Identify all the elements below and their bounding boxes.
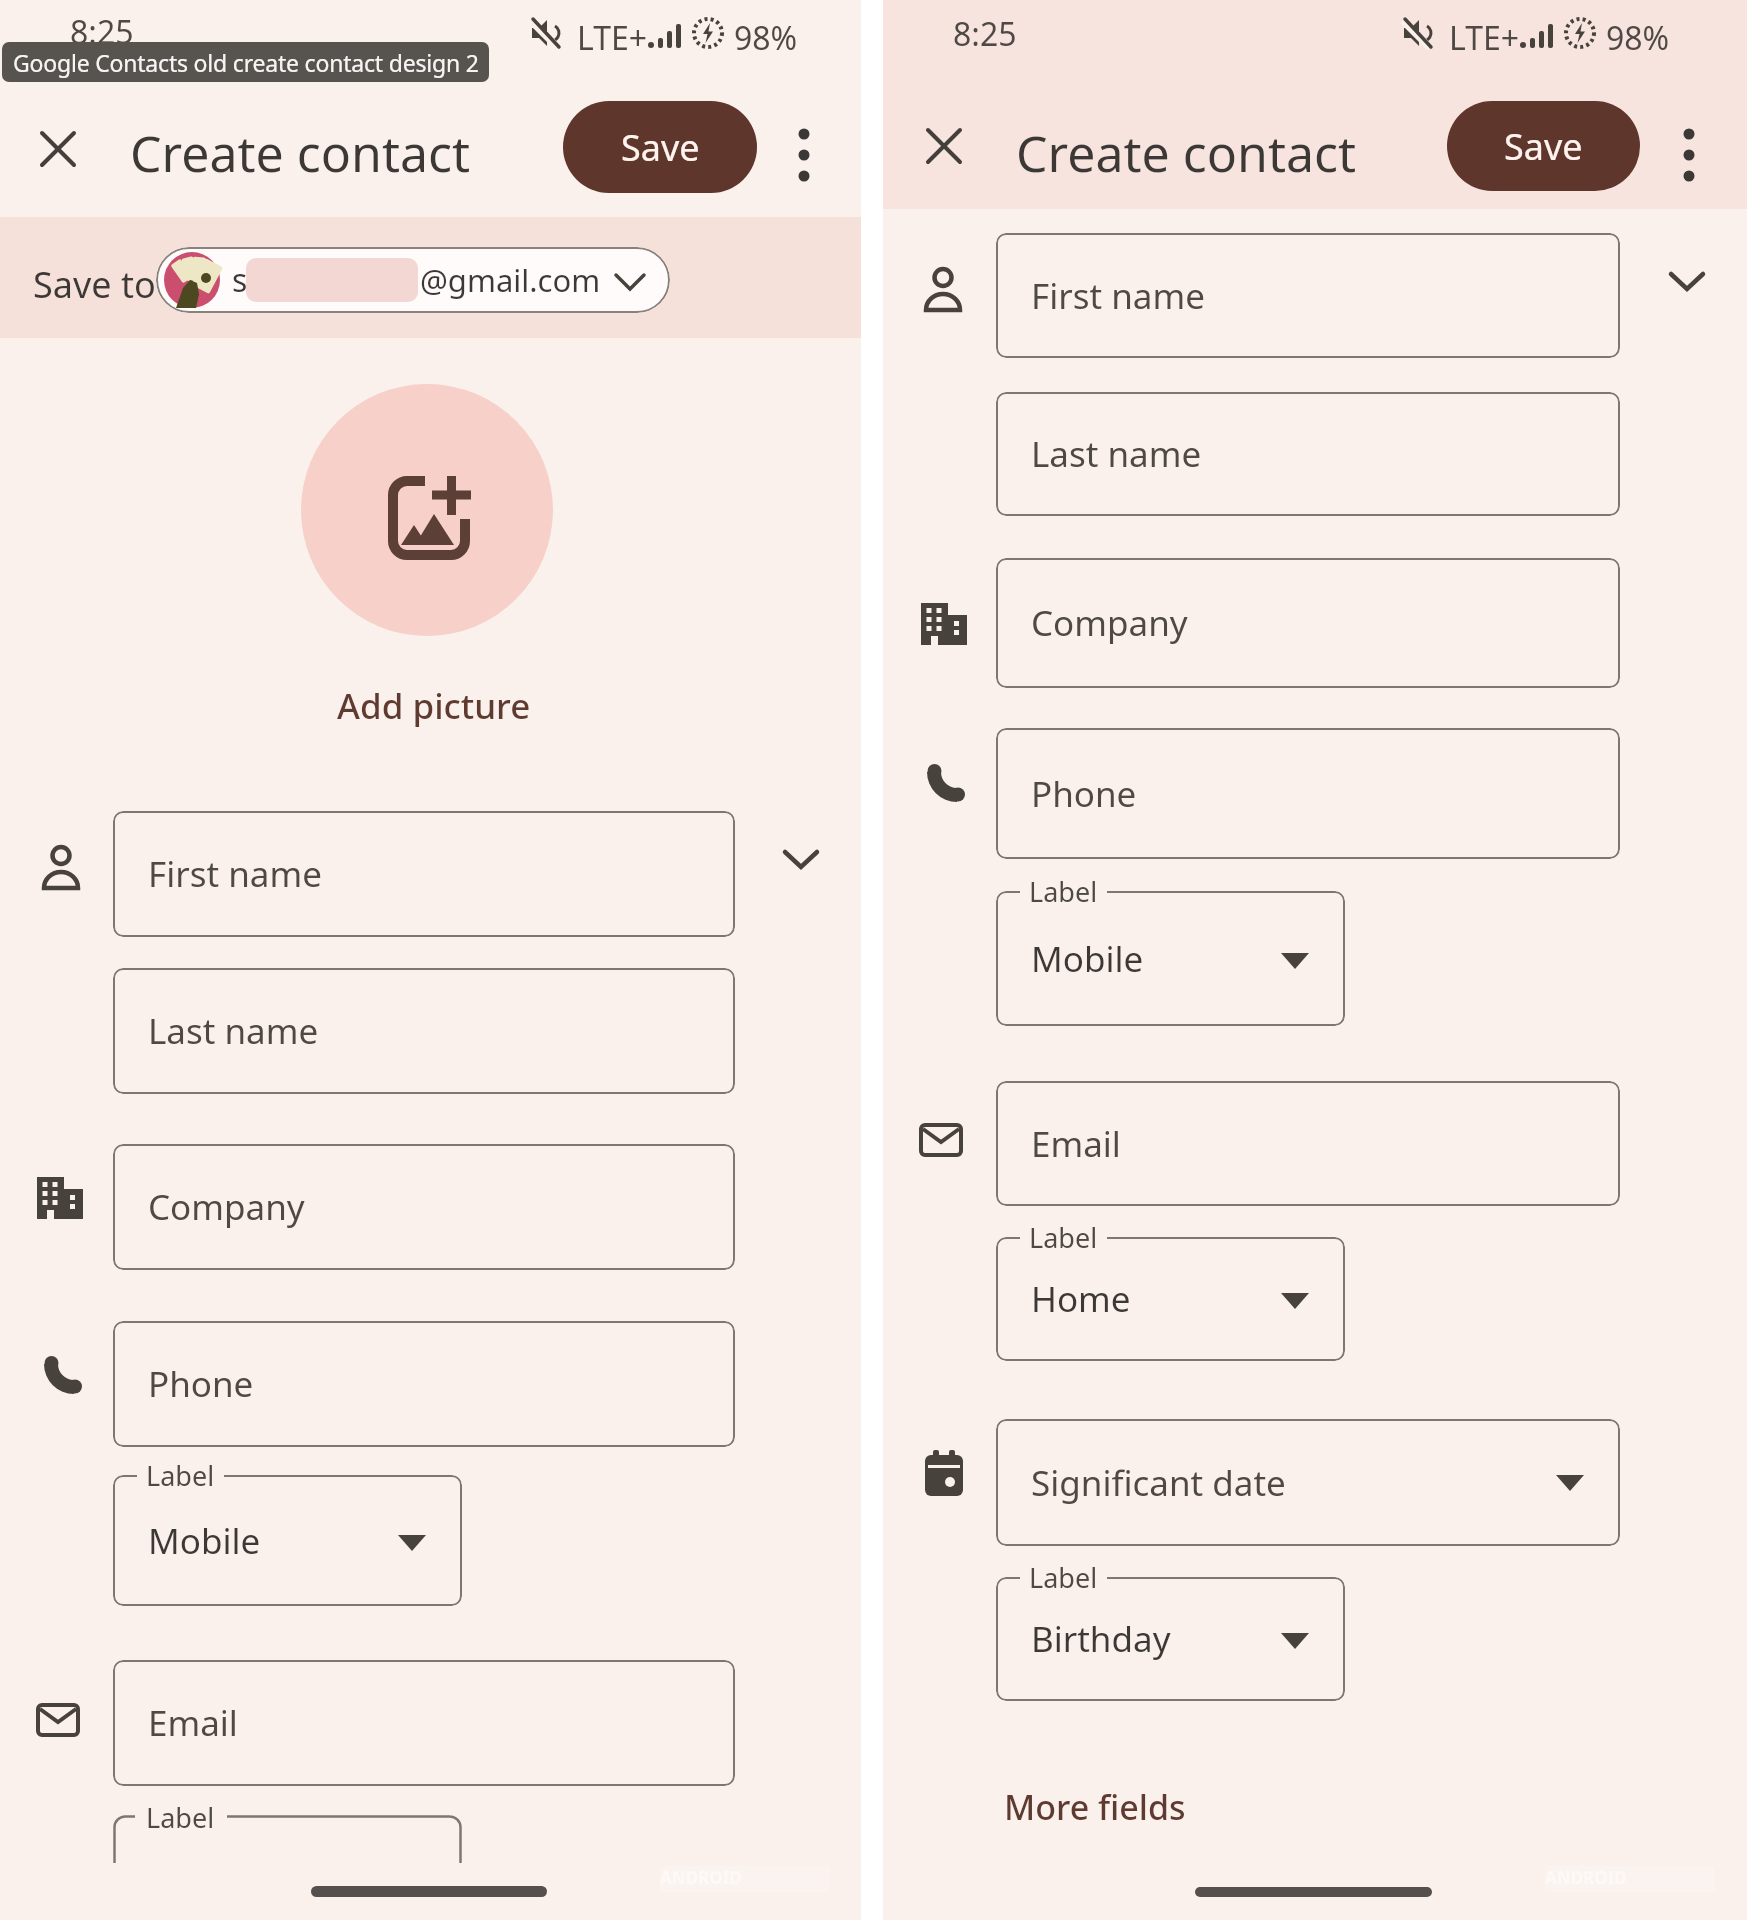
staticText: Phone <box>148 1360 254 1408</box>
staticText: Save <box>1504 122 1583 171</box>
staticText: Phone <box>1031 770 1137 818</box>
button[interactable]: First name <box>113 811 735 937</box>
button[interactable]: More fields <box>1004 1784 1186 1830</box>
staticText: s <box>232 258 248 302</box>
staticText: Label <box>146 1799 215 1836</box>
staticText: First name <box>1031 272 1205 320</box>
button[interactable]: Save <box>1447 101 1640 191</box>
staticText: Create contact <box>130 119 471 187</box>
button[interactable]: Birthday <box>996 1577 1345 1701</box>
staticText: Company <box>1031 599 1188 647</box>
button[interactable]: Home <box>996 1237 1345 1361</box>
staticText: Label <box>1029 1219 1098 1256</box>
button[interactable] <box>1681 124 1697 186</box>
button[interactable]: Phone <box>113 1321 735 1447</box>
button[interactable]: First name <box>996 233 1620 358</box>
staticText: Last name <box>1031 430 1202 478</box>
staticText: Home <box>1031 1275 1131 1323</box>
button[interactable]: Significant date <box>996 1419 1620 1546</box>
button[interactable] <box>783 850 819 869</box>
staticText: LTE+ <box>577 16 648 60</box>
button[interactable]: Mobile <box>113 1475 462 1606</box>
staticText: 98% <box>734 16 798 60</box>
staticText: Company <box>148 1183 305 1231</box>
staticText: Email <box>148 1699 238 1747</box>
staticText: Google Contacts old create contact desig… <box>13 47 479 78</box>
staticText: Birthday <box>1031 1615 1171 1663</box>
staticText: Save <box>621 123 700 172</box>
staticText: @gmail.com <box>420 259 601 301</box>
staticText: Label <box>146 1457 215 1494</box>
staticText: Label <box>1029 1559 1098 1596</box>
button[interactable] <box>41 132 75 166</box>
button[interactable]: Company <box>113 1144 735 1270</box>
button[interactable]: Phone <box>996 728 1620 859</box>
staticText: First name <box>148 850 322 898</box>
staticText: 8:25 <box>70 10 134 54</box>
button[interactable] <box>796 124 812 186</box>
staticText: LTE+ <box>1449 16 1520 60</box>
staticText: Label <box>1029 873 1098 910</box>
button[interactable]: Mobile <box>996 891 1345 1026</box>
staticText: 98% <box>1606 16 1670 60</box>
button[interactable]: Save <box>563 101 757 193</box>
staticText: Save to <box>33 260 156 309</box>
button[interactable]: Email <box>113 1660 735 1786</box>
button[interactable]: Last name <box>996 392 1620 516</box>
staticText: Last name <box>148 1007 319 1055</box>
button[interactable] <box>1669 272 1705 291</box>
button[interactable]: Company <box>996 558 1620 688</box>
staticText: Mobile <box>1031 935 1144 983</box>
staticText: Add picture <box>337 682 531 730</box>
button[interactable]: Last name <box>113 968 735 1094</box>
button[interactable]: s <box>156 247 670 313</box>
staticText: 8:25 <box>953 12 1017 56</box>
button[interactable]: Email <box>996 1081 1620 1206</box>
staticText: Significant date <box>1031 1459 1286 1507</box>
staticText: Email <box>1031 1120 1121 1168</box>
button[interactable] <box>301 384 553 636</box>
staticText: Mobile <box>148 1517 261 1565</box>
staticText: Create contact <box>1016 119 1357 187</box>
button[interactable] <box>927 129 961 163</box>
